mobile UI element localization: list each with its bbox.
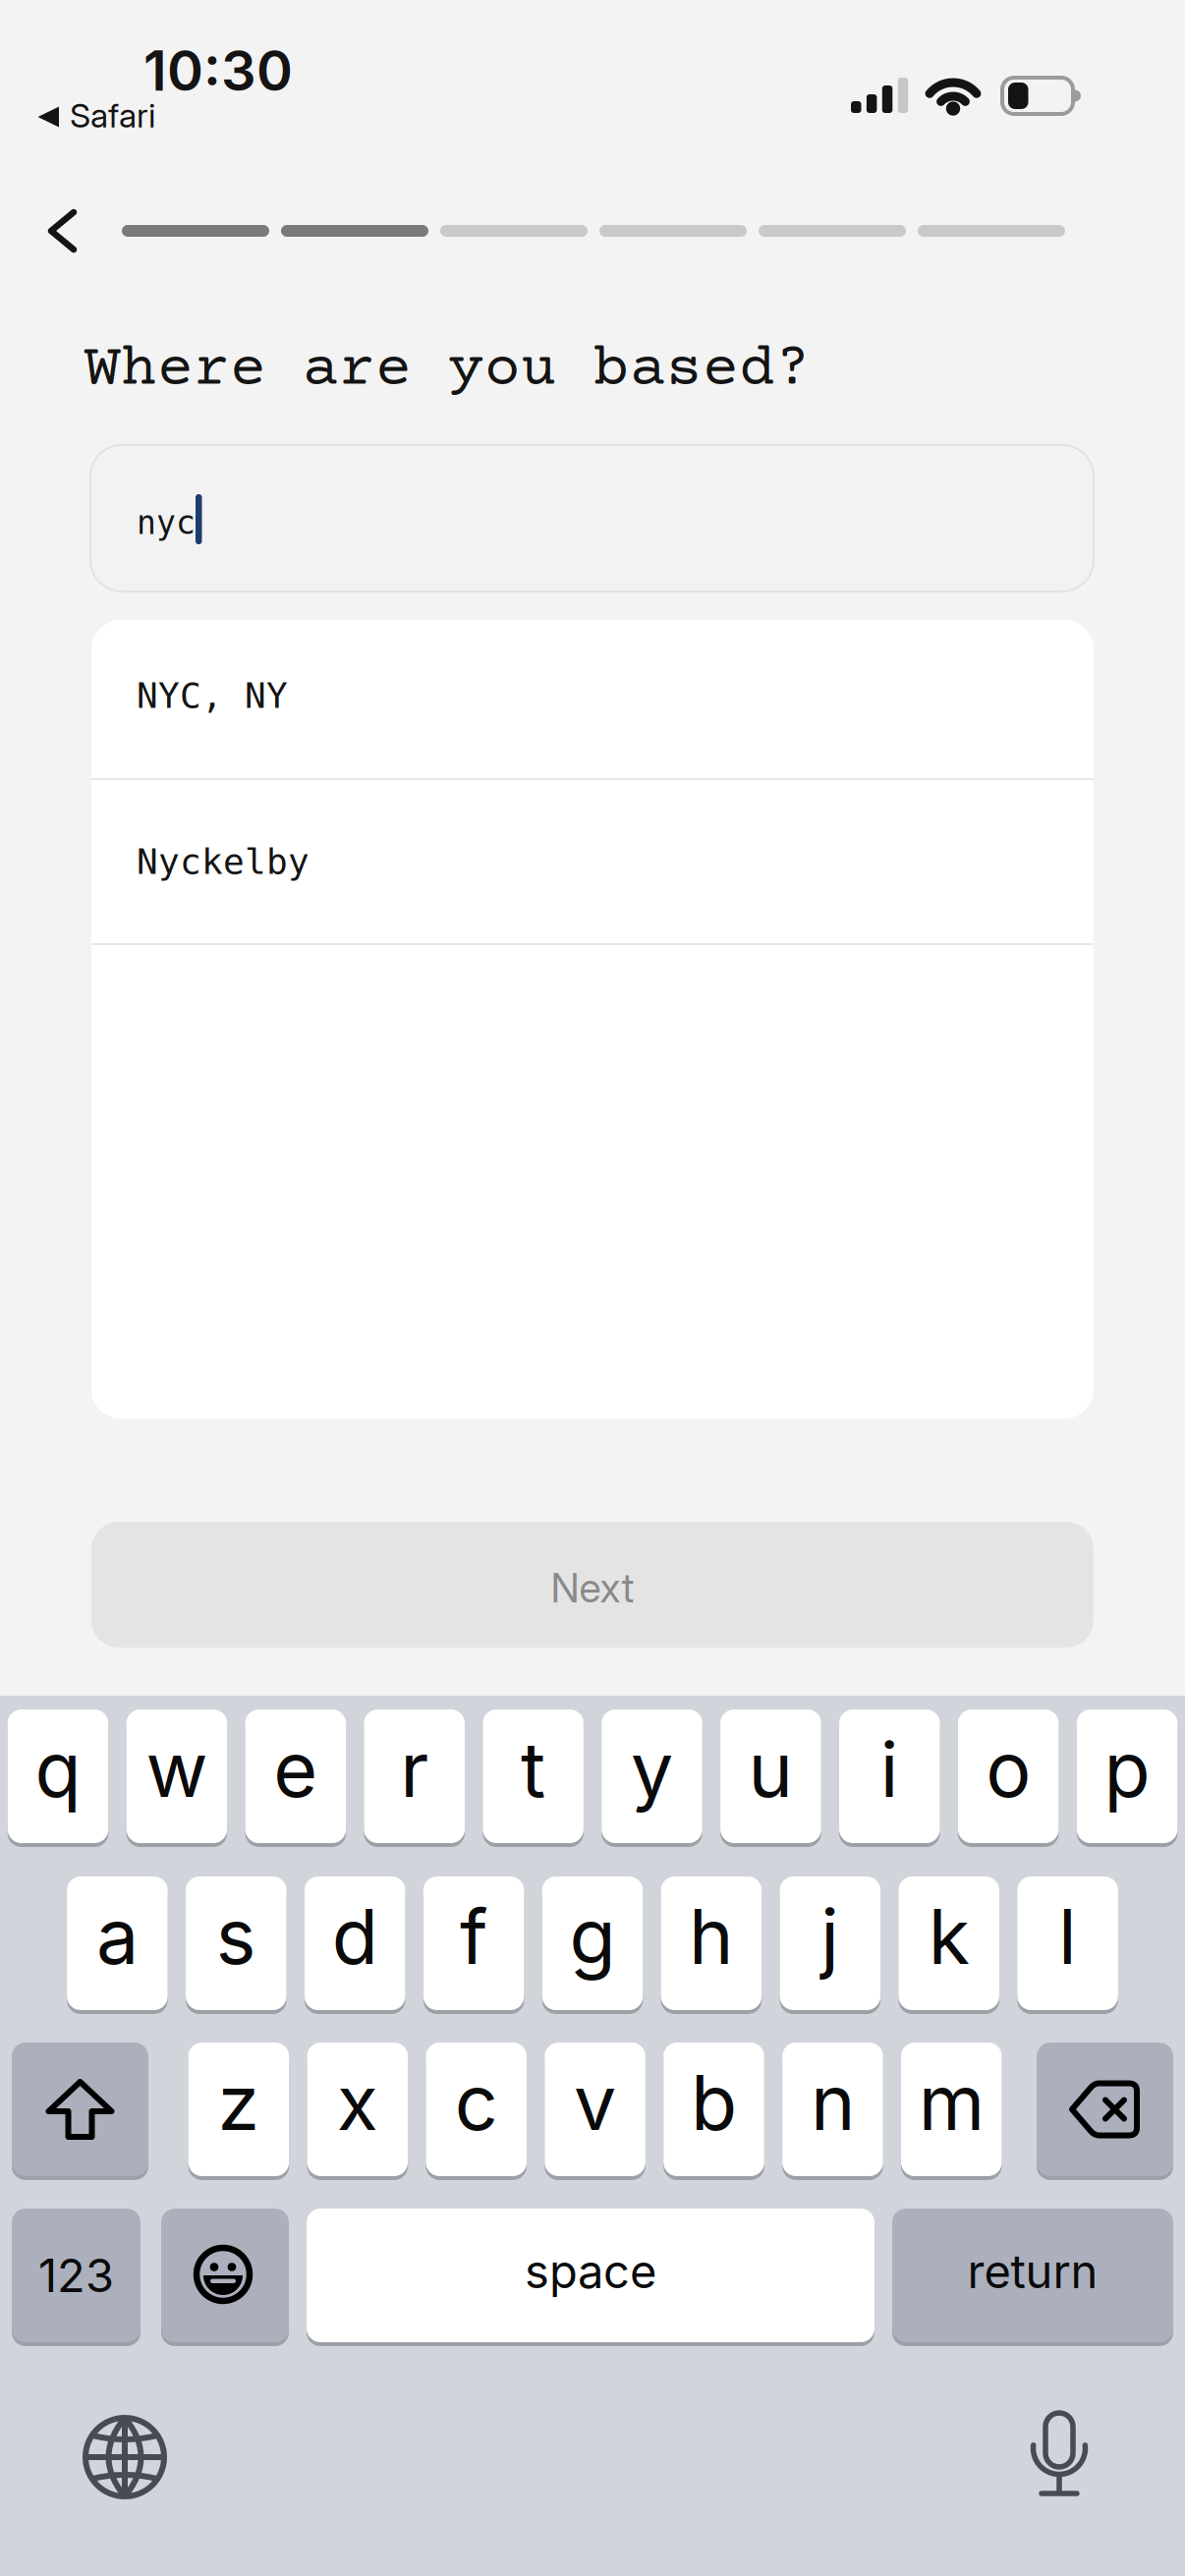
staticText: n	[811, 2057, 855, 2148]
staticText: g	[569, 1891, 616, 1982]
staticText: k	[928, 1891, 970, 1982]
staticText: 10:30	[143, 37, 293, 104]
button[interactable]: Next keyboard	[78, 2410, 172, 2504]
button[interactable]: j	[780, 1876, 880, 2010]
staticText: t	[521, 1724, 545, 1815]
button[interactable]: t	[483, 1709, 584, 1843]
button[interactable]: u	[720, 1709, 821, 1843]
staticText: b	[691, 2057, 737, 2148]
staticText: r	[400, 1724, 429, 1815]
button[interactable]: f	[423, 1876, 524, 2010]
button[interactable]: z	[188, 2043, 289, 2176]
staticText: q	[35, 1724, 81, 1815]
button[interactable]: n	[782, 2043, 883, 2176]
button[interactable]: Back	[47, 209, 81, 252]
button[interactable]: q	[8, 1709, 108, 1843]
staticText: j	[821, 1891, 839, 1982]
staticText: a	[96, 1891, 138, 1982]
button[interactable]: a	[67, 1876, 168, 2010]
staticText: e	[273, 1724, 318, 1815]
button[interactable]: y	[602, 1709, 702, 1843]
button[interactable]: Next	[91, 1522, 1094, 1648]
button[interactable]: space	[307, 2209, 875, 2342]
staticText: NYC, NY	[137, 675, 288, 716]
button[interactable]: s	[186, 1876, 287, 2010]
button[interactable]: m	[901, 2043, 1002, 2176]
button[interactable]: i	[839, 1709, 940, 1843]
button[interactable]: r	[364, 1709, 465, 1843]
staticText: Nyckelby	[137, 841, 310, 882]
button[interactable]: h	[661, 1876, 762, 2010]
staticText: p	[1104, 1724, 1150, 1815]
button[interactable]: b	[663, 2043, 764, 2176]
button[interactable]: c	[426, 2043, 527, 2176]
staticText: 123	[38, 2247, 114, 2303]
button[interactable]: Location	[90, 445, 1094, 591]
staticText: v	[574, 2057, 616, 2148]
button[interactable]: d	[305, 1876, 405, 2010]
staticText: o	[986, 1724, 1031, 1815]
button[interactable]: p	[1077, 1709, 1178, 1843]
staticText: x	[337, 2057, 378, 2148]
staticText: w	[146, 1724, 208, 1815]
button[interactable]: Delete	[1037, 2043, 1173, 2176]
button[interactable]: 123	[12, 2209, 141, 2342]
staticText: Where are you based?	[85, 337, 812, 404]
staticText: m	[919, 2057, 984, 2148]
staticText: u	[748, 1724, 793, 1815]
button[interactable]: e	[245, 1709, 346, 1843]
staticText: l	[1058, 1891, 1077, 1982]
button[interactable]: Emoji	[161, 2209, 289, 2342]
staticText: s	[216, 1891, 256, 1982]
staticText: return	[967, 2244, 1098, 2299]
button[interactable]: l	[1017, 1876, 1118, 2010]
staticText: z	[218, 2057, 260, 2148]
button[interactable]: k	[898, 1876, 999, 2010]
button[interactable]: Nyckelby	[91, 780, 1094, 943]
button[interactable]: return	[892, 2209, 1173, 2342]
button[interactable]: Shift	[12, 2043, 148, 2176]
staticText: d	[332, 1891, 378, 1982]
button[interactable]: o	[958, 1709, 1059, 1843]
staticText: i	[880, 1724, 899, 1815]
button[interactable]: w	[126, 1709, 227, 1843]
staticText: Safari	[70, 95, 155, 136]
staticText: space	[525, 2244, 656, 2299]
staticText: y	[631, 1724, 673, 1815]
staticText: h	[689, 1891, 734, 1982]
button[interactable]: g	[542, 1876, 643, 2010]
button[interactable]: x	[307, 2043, 408, 2176]
button[interactable]: Dictate	[1012, 2409, 1106, 2499]
button[interactable]: NYC, NY	[91, 620, 1094, 779]
staticText: Next	[551, 1563, 634, 1612]
staticText: c	[455, 2057, 498, 2148]
staticText: nyc	[137, 504, 196, 542]
staticText: f	[460, 1891, 487, 1982]
button[interactable]: v	[545, 2043, 645, 2176]
